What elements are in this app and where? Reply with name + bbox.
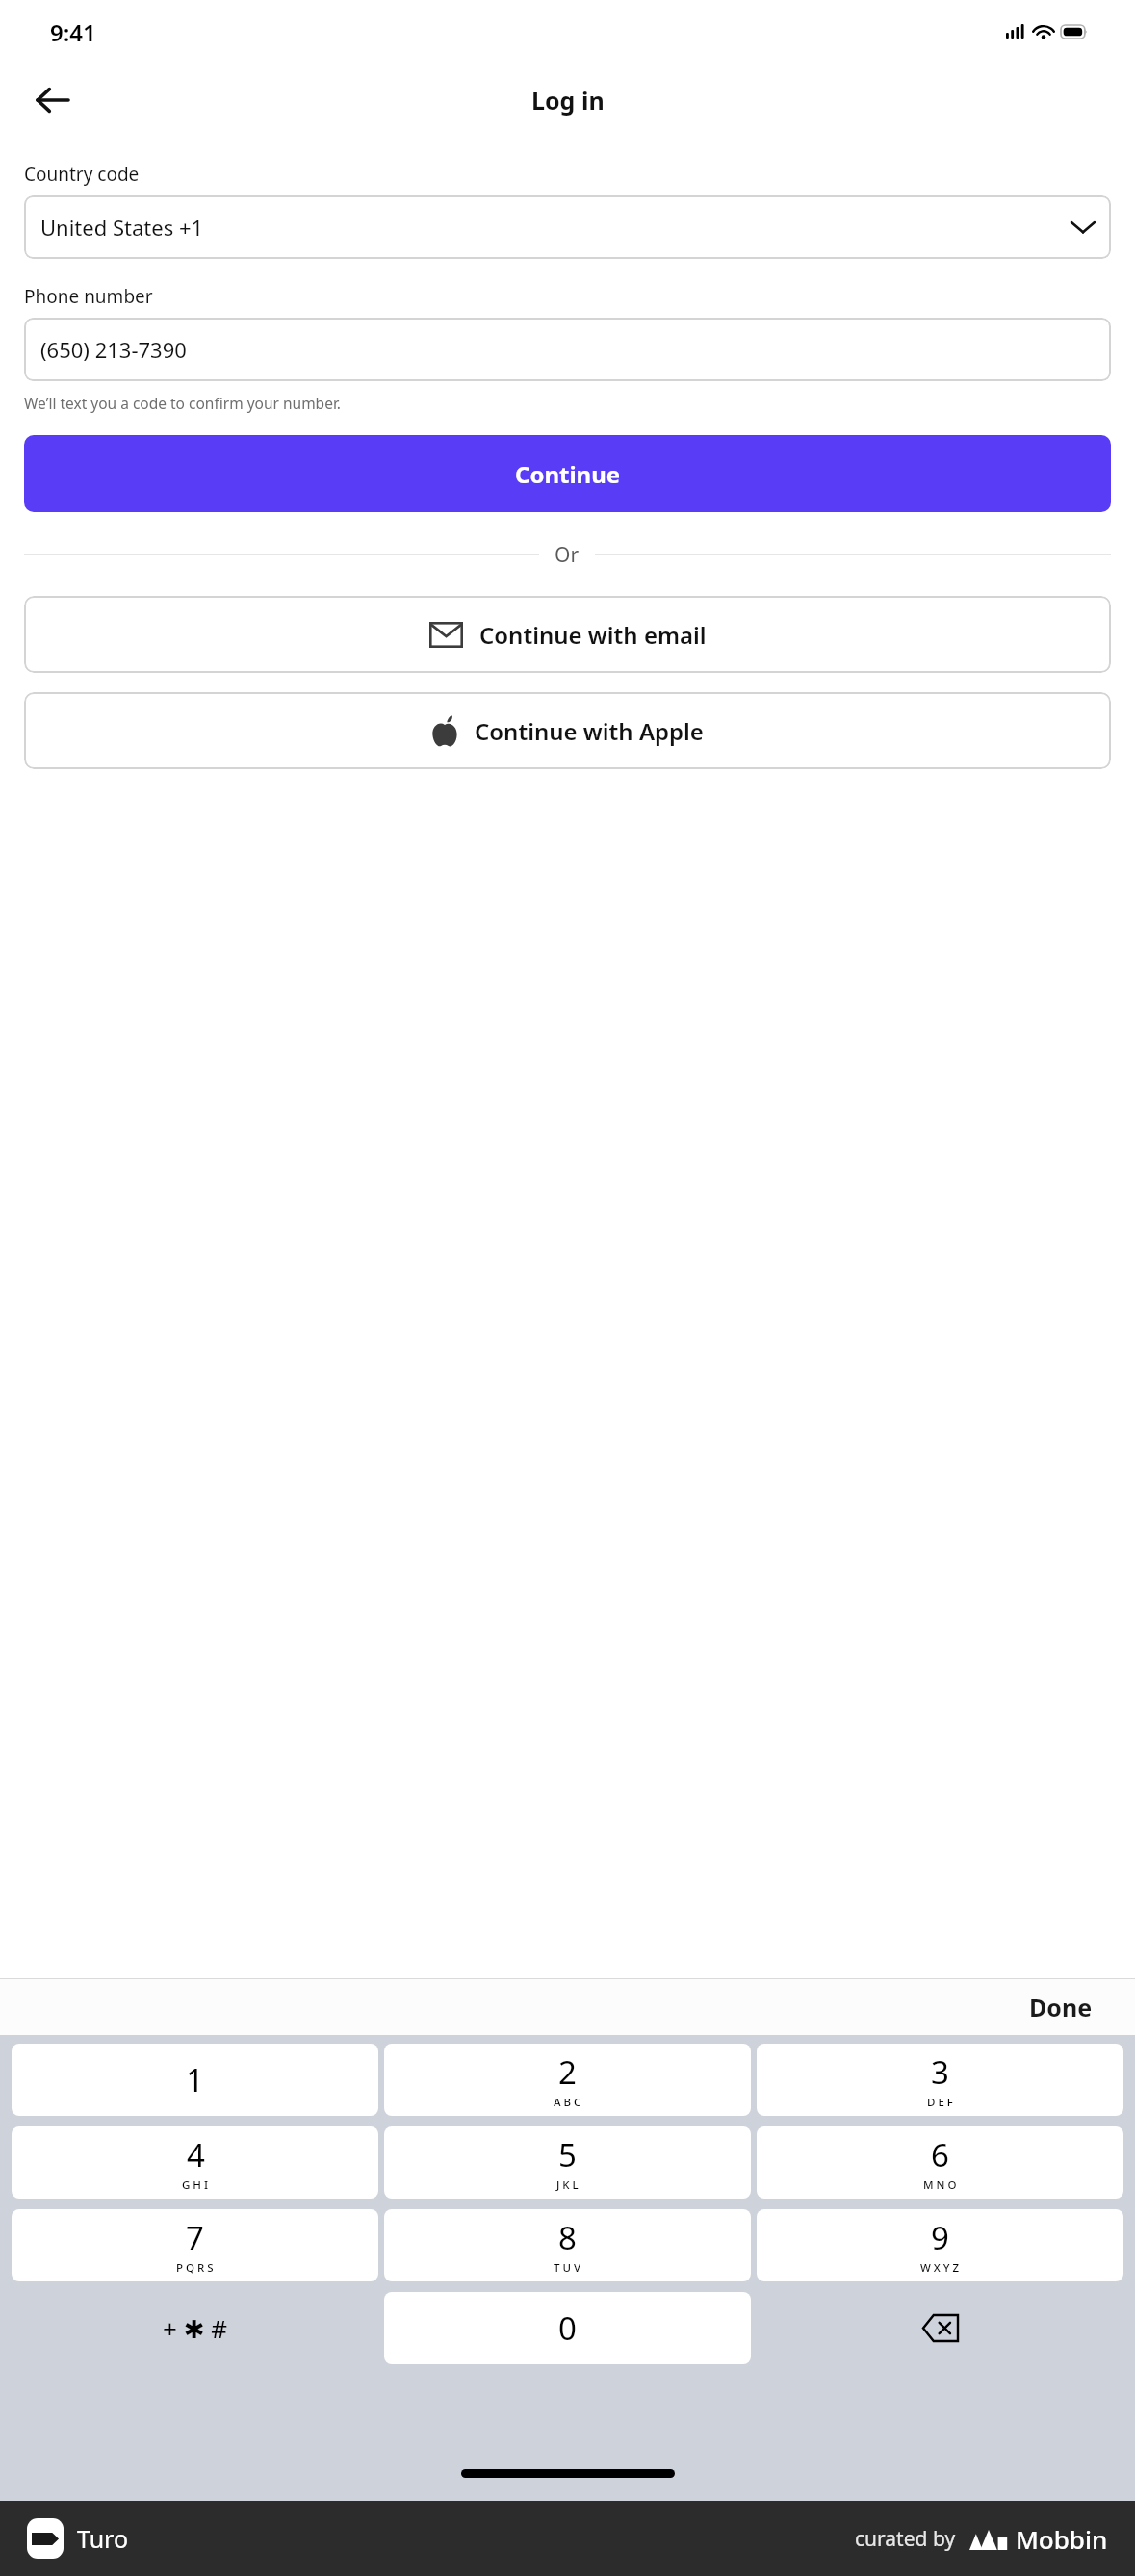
button[interactable]: 9	[757, 2209, 1123, 2281]
button[interactable]: 3	[757, 2044, 1123, 2116]
button[interactable]: Continue with email	[24, 596, 1111, 673]
button[interactable]: Back	[24, 72, 80, 128]
staticText: United States +1	[40, 213, 204, 242]
staticText: Continue	[515, 458, 621, 490]
staticText: 7	[186, 2216, 204, 2259]
staticText: 3	[931, 2050, 949, 2094]
button[interactable]: United States +1	[24, 195, 1111, 259]
staticText: (650) 213-7390	[40, 335, 187, 364]
staticText: Mobbin	[1016, 2522, 1108, 2556]
button[interactable]: 1	[12, 2044, 378, 2116]
staticText: 0	[558, 2306, 577, 2350]
staticText: 2	[558, 2050, 577, 2094]
staticText: 6	[931, 2133, 949, 2177]
button[interactable]: Symbols	[9, 2292, 381, 2364]
button[interactable]: Delete	[754, 2292, 1126, 2364]
button[interactable]: (650) 213-7390	[24, 318, 1111, 381]
staticText: Continue with Apple	[475, 715, 704, 747]
button[interactable]: Continue with Apple	[24, 692, 1111, 769]
button[interactable]: 6	[757, 2126, 1123, 2199]
button[interactable]: 7	[12, 2209, 378, 2281]
staticText: + ✱ #	[163, 2311, 227, 2345]
button[interactable]: 4	[12, 2126, 378, 2199]
staticText: D E F	[927, 2095, 953, 2110]
staticText: 5	[558, 2133, 577, 2177]
button[interactable]: Continue	[24, 435, 1111, 512]
staticText: Turo	[77, 2522, 129, 2555]
staticText: 9	[931, 2216, 949, 2259]
staticText: 9:41	[50, 16, 96, 48]
staticText: Or	[555, 541, 580, 569]
staticText: We’ll text you a code to confirm your nu…	[24, 393, 341, 413]
staticText: Continue with email	[479, 619, 707, 651]
staticText: Log in	[531, 84, 605, 116]
button[interactable]: 0	[384, 2292, 751, 2364]
staticText: Country code	[24, 162, 140, 187]
staticText: 8	[558, 2216, 577, 2259]
staticText: T U V	[554, 2260, 581, 2276]
staticText: J K L	[556, 2177, 579, 2193]
staticText: W X Y Z	[920, 2260, 960, 2276]
button[interactable]: Done	[1021, 1985, 1100, 2029]
button[interactable]: 5	[384, 2126, 751, 2199]
staticText: 4	[187, 2133, 205, 2177]
staticText: M N O	[923, 2177, 957, 2193]
staticText: Done	[1029, 1991, 1093, 2023]
staticText: curated by	[855, 2525, 956, 2553]
staticText: 1	[186, 2058, 204, 2101]
staticText: Phone number	[24, 284, 153, 309]
staticText: A B C	[554, 2095, 581, 2110]
button[interactable]: 8	[384, 2209, 751, 2281]
staticText: G H I	[182, 2177, 209, 2193]
button[interactable]: 2	[384, 2044, 751, 2116]
staticText: P Q R S	[176, 2260, 214, 2276]
